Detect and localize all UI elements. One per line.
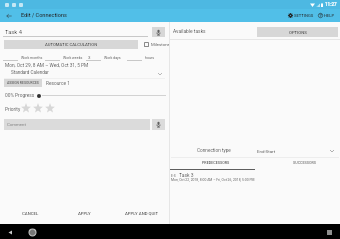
staticText: OPTIONS [289, 30, 307, 35]
staticText: APPLY [78, 211, 91, 216]
button[interactable]: E-S [170, 170, 340, 184]
staticText: Mon, Oct 22, 2018, 8:00 AM – Fri, Oct 26… [171, 178, 255, 182]
button[interactable]: Milestone [144, 42, 170, 47]
button[interactable]: ASSIGN RESOURCES [4, 79, 42, 87]
button[interactable]: Home [25, 225, 39, 239]
button[interactable]: Voice input [152, 27, 165, 37]
staticText: 00% Progress [5, 93, 35, 99]
button[interactable]: SUCCESSORS [274, 158, 336, 168]
staticText: Work months [21, 56, 43, 60]
staticText: APPLY AND QUIT [125, 211, 159, 216]
staticText: AUTOMATIC CALCULATION [45, 42, 98, 47]
button[interactable]: Priority star [44, 102, 56, 114]
staticText: Work weeks [63, 56, 83, 60]
staticText: CANCEL [22, 211, 39, 216]
staticText: Resource 1 [46, 81, 70, 87]
staticText: Comment [7, 122, 26, 127]
button[interactable]: Connection type [170, 145, 340, 155]
staticText: End-Start [257, 149, 276, 154]
staticText: Available tasks [173, 28, 206, 34]
button[interactable]: Standard Calendar [0, 70, 169, 77]
button[interactable]: PREDECESSORS [171, 158, 260, 168]
button[interactable]: Comment [4, 119, 150, 130]
button[interactable]: Progress [37, 94, 41, 98]
button[interactable]: Priority star [32, 102, 44, 114]
staticText: 11:27 [325, 2, 337, 7]
staticText: Priority [5, 107, 21, 113]
staticText: SUCCESSORS [293, 161, 317, 165]
staticText: HELP [324, 13, 335, 18]
staticText: Work days [104, 56, 121, 60]
button[interactable]: CANCEL [20, 209, 41, 218]
staticText: Milestone [151, 42, 170, 47]
staticText: Connection type [197, 148, 231, 154]
button[interactable]: Recent apps [322, 225, 336, 239]
button[interactable]: SETTINGS [287, 12, 315, 19]
staticText: E-S [171, 174, 176, 178]
staticText: hours [145, 56, 155, 60]
staticText: Mon, Oct 29, 8 AM – Wed, Oct 31, 5 PM [5, 63, 89, 69]
staticText: 3 [88, 55, 91, 60]
button[interactable]: AUTOMATIC CALCULATION [4, 40, 138, 49]
button[interactable]: HELP [317, 12, 336, 19]
staticText: PREDECESSORS [202, 161, 230, 165]
staticText: ASSIGN RESOURCES [7, 81, 39, 85]
button[interactable]: APPLY AND QUIT [123, 209, 161, 218]
button[interactable]: Back [3, 225, 17, 239]
staticText: Standard Calendar [11, 70, 49, 75]
button[interactable]: Back [3, 10, 14, 21]
button[interactable]: APPLY [76, 209, 93, 218]
staticText: SETTINGS [294, 13, 314, 18]
staticText: Task 3 [179, 172, 194, 178]
button[interactable]: Priority star [20, 102, 32, 114]
button[interactable]: OPTIONS [257, 27, 338, 37]
staticText: Edit / Connections [21, 12, 67, 19]
button[interactable]: Voice comment [152, 119, 165, 130]
staticText: Task 4 [5, 29, 22, 36]
